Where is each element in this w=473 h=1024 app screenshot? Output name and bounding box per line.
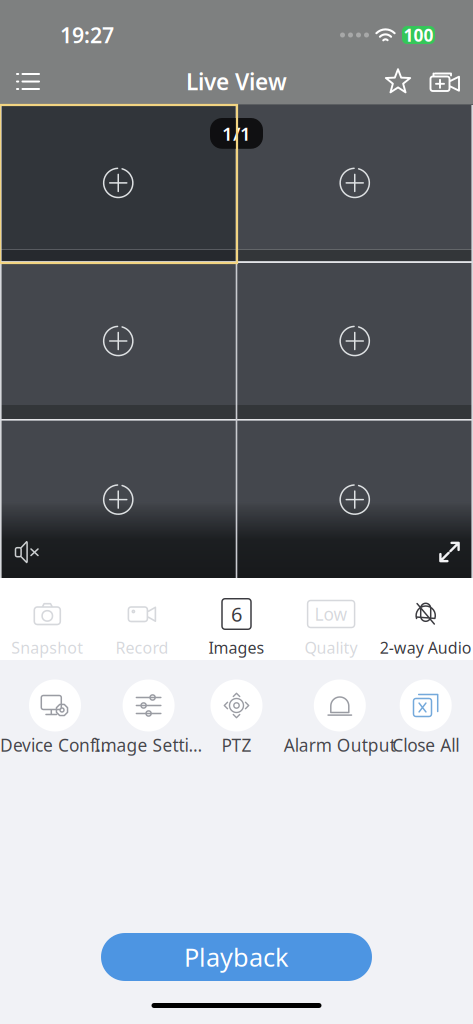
staticText: Device Conf…	[0, 733, 110, 756]
button[interactable]: Alarm Output	[284, 679, 378, 756]
button[interactable]: 6	[189, 578, 284, 660]
button[interactable]: PTZ	[189, 679, 284, 756]
button[interactable]: Mute	[0, 526, 54, 578]
staticText: Snapshot	[11, 637, 83, 658]
staticText: Quality	[305, 637, 358, 658]
staticText: 1/1	[222, 121, 251, 146]
button[interactable]: Low	[284, 578, 378, 660]
staticText: Live View	[186, 66, 287, 96]
staticText: Record	[115, 637, 168, 658]
button[interactable]: Add camera	[421, 59, 469, 104]
button[interactable]: Close All	[378, 679, 473, 756]
staticText: Alarm Output	[284, 733, 396, 756]
button[interactable]: Full screen	[426, 527, 473, 577]
staticText: Close All	[392, 733, 459, 756]
button[interactable]: Menu	[4, 59, 52, 104]
staticText: Images	[208, 637, 264, 658]
staticText: 6	[231, 601, 242, 627]
button[interactable]: Device Conf…	[0, 679, 95, 756]
button[interactable]: Image Setti…	[95, 679, 189, 756]
staticText: 2-way Audio	[380, 637, 472, 658]
button[interactable]: Favorites	[375, 59, 421, 104]
staticText: 19:27	[60, 21, 114, 49]
staticText: Low	[315, 602, 348, 625]
button[interactable]: Snapshot	[0, 578, 95, 660]
staticText: 100	[403, 23, 433, 46]
button[interactable]: 2-way Audio	[378, 578, 473, 660]
staticText: Image Setti…	[95, 733, 203, 756]
button[interactable]: Record	[95, 578, 189, 660]
button[interactable]: Playback	[101, 933, 372, 981]
staticText: PTZ	[221, 733, 251, 756]
staticText: Playback	[184, 940, 289, 974]
